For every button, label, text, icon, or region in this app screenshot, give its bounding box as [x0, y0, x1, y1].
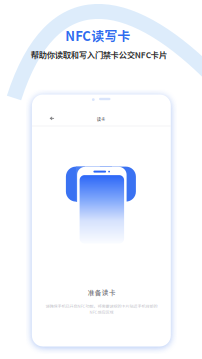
staticText: 准备读卡	[88, 288, 116, 297]
staticText: NFC读写卡	[65, 26, 130, 45]
button[interactable]: 返回	[44, 111, 60, 125]
staticText: 读卡	[97, 116, 105, 122]
staticText: 请确保手机已开启NFC功能，将需要读取的卡片贴近手机背部的NFC感应区域	[45, 303, 157, 315]
staticText: 帮助你读取和写入门禁卡公交NFC卡片	[31, 49, 167, 61]
